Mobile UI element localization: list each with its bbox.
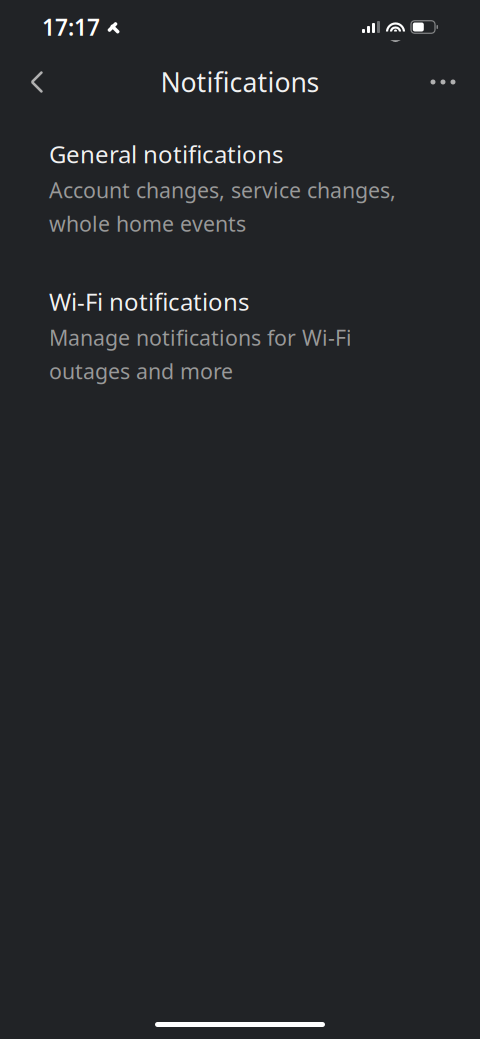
staticText: Account changes, service changes, whole … — [49, 176, 396, 238]
staticText: General notifications — [49, 138, 283, 170]
button[interactable]: More options — [420, 58, 466, 106]
button[interactable]: Wi-Fi notifications — [20, 283, 460, 387]
staticText: 17:17 — [42, 12, 100, 42]
staticText: Manage notifications for Wi-Fi outages a… — [49, 323, 352, 385]
staticText: Wi-Fi notifications — [49, 285, 249, 317]
button[interactable]: Back — [14, 58, 60, 106]
staticText: Notifications — [160, 64, 319, 100]
button[interactable]: General notifications — [20, 136, 460, 239]
